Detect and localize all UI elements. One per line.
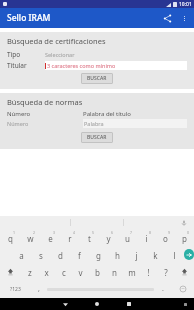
button[interactable]: z: [21, 263, 38, 280]
button[interactable]: f: [70, 246, 89, 263]
button[interactable]: v: [72, 263, 89, 280]
staticText: 6: [111, 230, 114, 235]
button[interactable]: Número: [7, 119, 77, 128]
button[interactable]: Recents: [119, 298, 139, 310]
staticText: m: [128, 267, 136, 278]
button[interactable]: Keyboard switcher: [179, 298, 191, 310]
button[interactable]: g: [89, 246, 108, 263]
button[interactable]: 6: [99, 229, 118, 246]
staticText: !: [147, 267, 150, 278]
button[interactable]: s: [31, 246, 51, 263]
button[interactable]: h: [108, 246, 127, 263]
button[interactable]: BUSCAR: [81, 132, 113, 143]
button[interactable]: ?: [157, 263, 174, 280]
button[interactable]: j: [127, 246, 146, 263]
button[interactable]: More options: [176, 10, 192, 26]
button[interactable]: 5: [80, 229, 99, 246]
button[interactable]: Shift: [174, 263, 194, 280]
staticText: e: [48, 233, 53, 244]
button[interactable]: k: [146, 246, 165, 263]
button[interactable]: n: [106, 263, 123, 280]
staticText: z: [28, 267, 32, 278]
button[interactable]: m: [123, 263, 140, 280]
button[interactable]: BUSCAR: [81, 73, 113, 84]
button[interactable]: 9: [156, 229, 175, 246]
staticText: f: [78, 250, 81, 261]
button[interactable]: Share: [158, 9, 176, 27]
button[interactable]: Space: [47, 285, 154, 293]
staticText: n: [112, 267, 117, 278]
button[interactable]: 3: [40, 229, 60, 246]
staticText: Palabra: [84, 120, 104, 127]
staticText: b: [95, 267, 100, 278]
staticText: g: [96, 250, 101, 261]
staticText: BUSCAR: [87, 134, 107, 141]
staticText: o: [163, 233, 168, 244]
button[interactable]: 3 caracteres como mínimo: [45, 61, 187, 70]
button[interactable]: Palabra: [83, 119, 187, 128]
button[interactable]: Home: [87, 298, 107, 310]
button[interactable]: d: [51, 246, 70, 263]
button[interactable]: a: [11, 246, 31, 263]
staticText: x: [44, 267, 49, 278]
staticText: y: [106, 233, 111, 244]
staticText: c: [62, 267, 66, 278]
staticText: 8: [149, 230, 152, 235]
button[interactable]: 4: [60, 229, 80, 246]
staticText: ?123: [10, 286, 21, 293]
staticText: Número: [7, 120, 29, 127]
staticText: 10:01: [179, 1, 192, 8]
button[interactable]: Comma: [30, 280, 47, 298]
button[interactable]: Period: [154, 280, 171, 298]
staticText: Sello IRAM: [7, 12, 51, 24]
button[interactable]: c: [55, 263, 72, 280]
staticText: l: [173, 250, 176, 261]
staticText: s: [39, 250, 43, 261]
button[interactable]: 2: [20, 229, 40, 246]
button[interactable]: Back: [55, 298, 75, 310]
staticText: Búsqueda de certificaciones: [7, 36, 106, 46]
button[interactable]: l: [165, 246, 184, 263]
staticText: .: [162, 284, 164, 294]
staticText: v: [78, 267, 83, 278]
button[interactable]: x: [38, 263, 55, 280]
staticText: Tipo: [7, 50, 45, 59]
staticText: 5: [92, 230, 95, 235]
staticText: Titular: [7, 61, 45, 70]
staticText: 3: [53, 230, 56, 235]
staticText: 0: [187, 230, 190, 235]
staticText: d: [58, 250, 63, 261]
staticText: ,: [38, 284, 40, 294]
button[interactable]: ?123: [0, 280, 30, 298]
button[interactable]: Shift: [0, 263, 21, 280]
button[interactable]: 1: [0, 229, 20, 246]
staticText: h: [115, 250, 120, 261]
staticText: 7: [130, 230, 133, 235]
staticText: p: [182, 233, 187, 244]
staticText: Búsqueda de normas: [7, 97, 83, 107]
staticText: Seleccionar: [45, 51, 75, 58]
button[interactable]: Enter: [184, 246, 194, 263]
staticText: 2: [33, 230, 36, 235]
staticText: k: [153, 250, 158, 261]
staticText: 3 caracteres como mínimo: [47, 62, 116, 69]
staticText: u: [125, 233, 130, 244]
staticText: t: [88, 233, 91, 244]
button[interactable]: 0: [175, 229, 194, 246]
button[interactable]: Voice input: [179, 218, 189, 228]
button[interactable]: !: [140, 263, 157, 280]
staticText: ?: [164, 267, 168, 278]
staticText: q: [8, 233, 13, 244]
button[interactable]: Seleccionar: [45, 50, 187, 59]
staticText: r: [68, 233, 72, 244]
staticText: j: [135, 250, 138, 261]
staticText: a: [19, 250, 24, 261]
button[interactable]: 8: [137, 229, 156, 246]
staticText: w: [27, 233, 34, 244]
staticText: BUSCAR: [87, 75, 107, 82]
button[interactable]: 7: [118, 229, 137, 246]
staticText: i: [145, 233, 148, 244]
staticText: 1: [13, 230, 16, 235]
button[interactable]: b: [89, 263, 106, 280]
button[interactable]: Emoji: [171, 280, 194, 298]
